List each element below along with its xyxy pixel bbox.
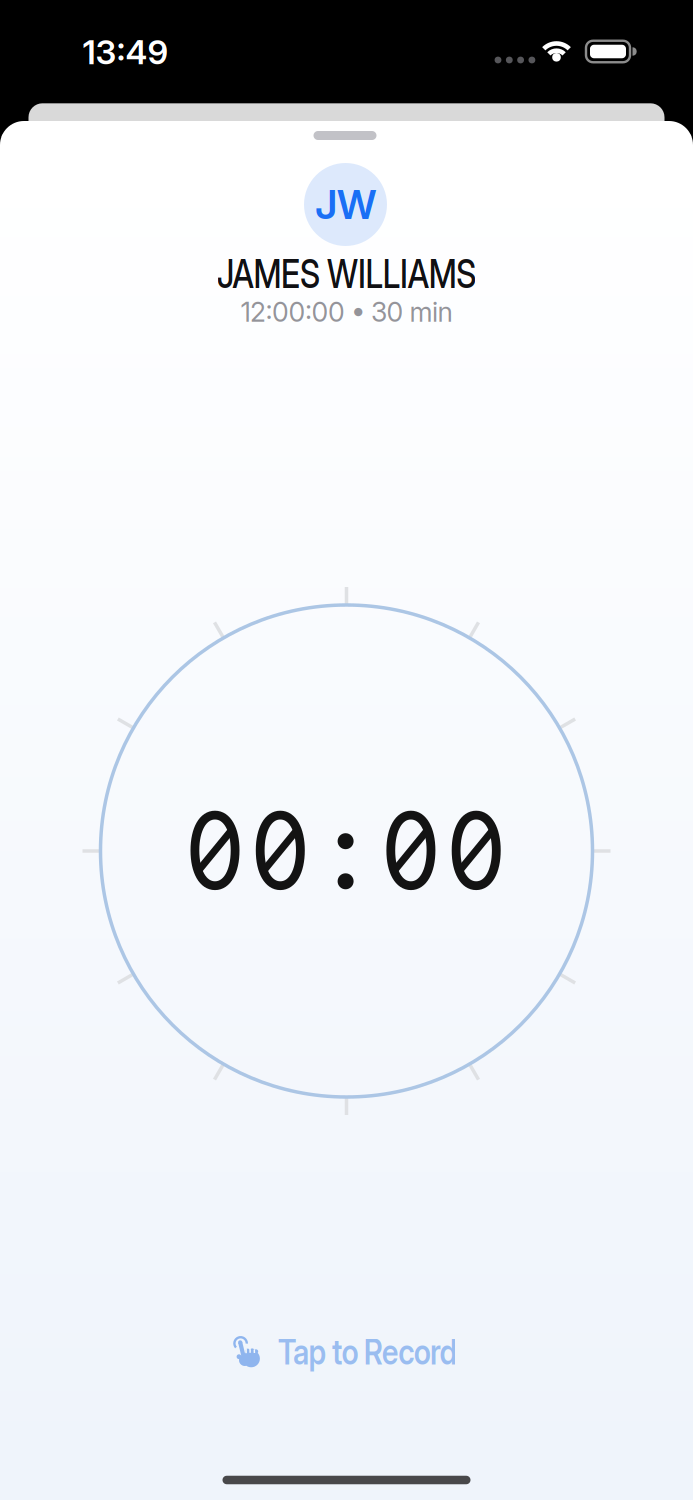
staticText: 13:49 (82, 32, 168, 72)
staticText: Tap to Record (262, 1332, 473, 1372)
staticText: 12:00:00 • 30 min (240, 296, 452, 328)
staticText: JW (315, 181, 376, 228)
button[interactable]: Tap to Record (234, 1332, 473, 1372)
staticText: JAMES WILLIAMS (184, 249, 509, 298)
